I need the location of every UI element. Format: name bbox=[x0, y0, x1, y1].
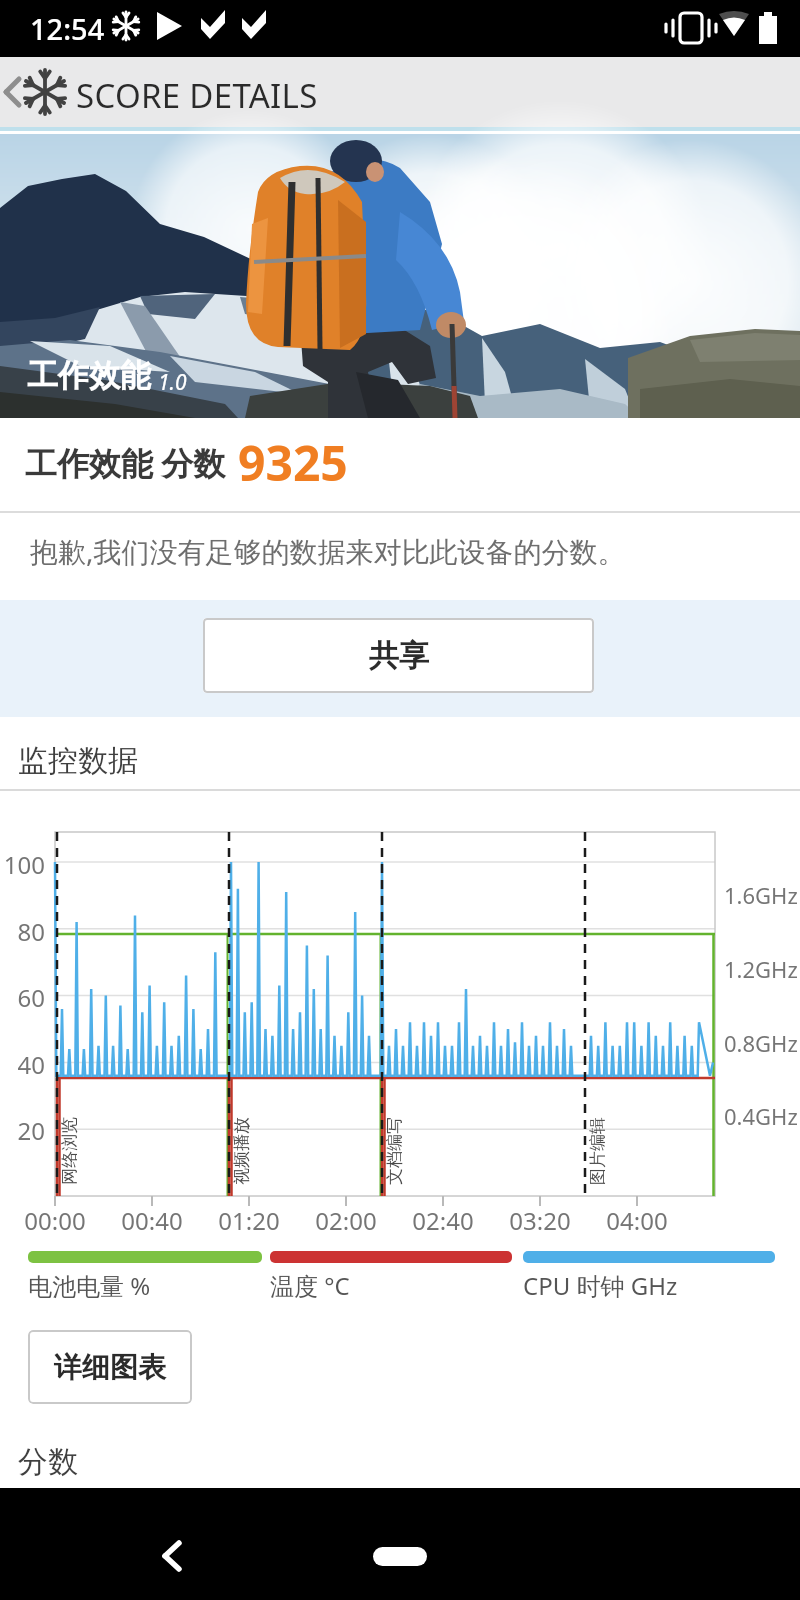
staticText: 文档编写 bbox=[384, 1117, 405, 1185]
staticText: 12:54 bbox=[30, 9, 105, 48]
button[interactable] bbox=[140, 1526, 200, 1586]
staticText: 1.2GHz bbox=[724, 954, 798, 984]
button[interactable] bbox=[373, 1547, 427, 1566]
button[interactable]: 共享 bbox=[203, 618, 594, 693]
staticText: 视频播放 bbox=[231, 1117, 252, 1185]
staticText: 9325 bbox=[238, 430, 348, 495]
staticText: 1.6GHz bbox=[724, 880, 798, 910]
button[interactable]: 详细图表 bbox=[28, 1330, 192, 1404]
staticText: 抱歉,我们没有足够的数据来对比此设备的分数。 bbox=[30, 532, 626, 570]
staticText: 工作效能 bbox=[27, 356, 151, 395]
button[interactable] bbox=[0, 57, 70, 127]
staticText: CPU 时钟 GHz bbox=[523, 1269, 678, 1302]
staticText: 20 bbox=[0, 1114, 45, 1147]
staticText: 分数 bbox=[18, 1443, 78, 1481]
staticText: 共享 bbox=[369, 637, 429, 675]
staticText: 100 bbox=[0, 848, 45, 881]
staticText: 电池电量 % bbox=[28, 1269, 151, 1302]
staticText: SCORE DETAILS bbox=[76, 73, 318, 118]
staticText: 00:40 bbox=[117, 1204, 187, 1237]
staticText: 工作效能 分数 bbox=[25, 441, 226, 485]
staticText: 03:20 bbox=[505, 1204, 575, 1237]
staticText: 0.4GHz bbox=[724, 1101, 798, 1131]
staticText: 1.0 bbox=[158, 368, 187, 397]
staticText: 04:00 bbox=[602, 1204, 672, 1237]
staticText: 40 bbox=[0, 1048, 45, 1081]
staticText: 60 bbox=[0, 981, 45, 1014]
staticText: 0.8GHz bbox=[724, 1028, 798, 1058]
staticText: 01:20 bbox=[214, 1204, 284, 1237]
staticText: 温度 °C bbox=[270, 1269, 350, 1302]
staticText: 02:40 bbox=[408, 1204, 478, 1237]
staticText: 详细图表 bbox=[54, 1350, 166, 1385]
staticText: 网络浏览 bbox=[59, 1117, 80, 1185]
staticText: 02:00 bbox=[311, 1204, 381, 1237]
staticText: 00:00 bbox=[20, 1204, 90, 1237]
staticText: 80 bbox=[0, 915, 45, 948]
staticText: 监控数据 bbox=[18, 742, 138, 780]
staticText: 图片编辑 bbox=[587, 1117, 608, 1185]
